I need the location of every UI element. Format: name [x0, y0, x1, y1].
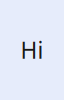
staticText: Hi — [20, 35, 43, 65]
